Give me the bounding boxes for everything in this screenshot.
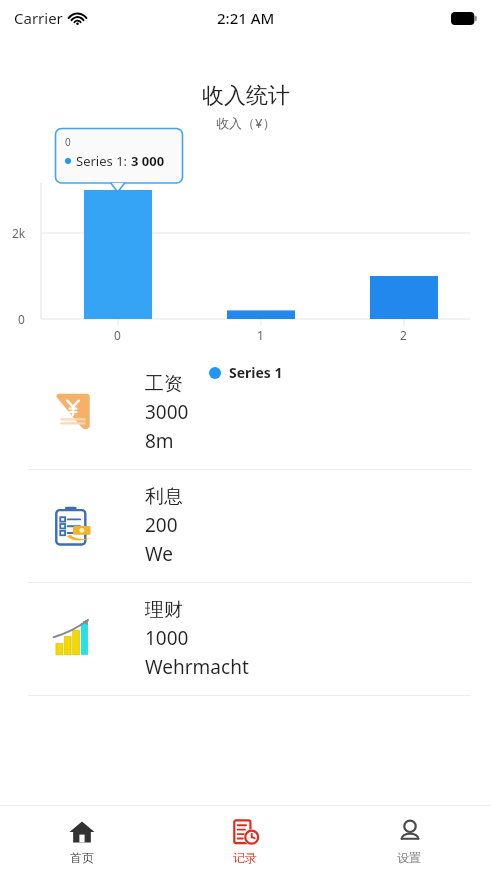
staticText: 工资 — [145, 372, 183, 396]
staticText: 记录 — [233, 850, 257, 865]
staticText: 0 — [65, 135, 71, 149]
button[interactable]: 利息 — [0, 470, 491, 582]
staticText: 利息 — [145, 485, 183, 509]
staticText: 0 — [18, 311, 25, 327]
button[interactable]: 工资 — [0, 357, 491, 469]
staticText: 1000 — [145, 625, 189, 651]
staticText: 8m — [145, 428, 174, 454]
staticText: 2k — [12, 225, 26, 241]
staticText: 收入（¥） — [216, 114, 276, 132]
staticText: Wehrmacht — [145, 654, 249, 680]
staticText: Series 1 — [229, 363, 283, 382]
staticText: 0 — [114, 327, 121, 343]
staticText: 收入统计 — [202, 82, 290, 110]
staticText: 3000 — [145, 399, 189, 425]
staticText: Carrier — [14, 8, 63, 28]
staticText: 2:21 AM — [217, 8, 275, 28]
staticText: 200 — [145, 512, 178, 538]
staticText: Series 1: — [76, 152, 131, 170]
button[interactable]: 理财 — [0, 583, 491, 695]
staticText: 首页 — [70, 850, 94, 865]
staticText: We — [145, 541, 174, 567]
button[interactable]: 设置 — [327, 806, 491, 877]
staticText: 设置 — [397, 850, 421, 865]
staticText: 理财 — [145, 598, 183, 622]
button[interactable]: 首页 — [0, 806, 163, 877]
staticText: 3 000 — [131, 152, 165, 170]
button[interactable]: 记录 — [163, 806, 327, 877]
staticText: 1 — [257, 327, 264, 343]
staticText: 2 — [400, 327, 407, 343]
